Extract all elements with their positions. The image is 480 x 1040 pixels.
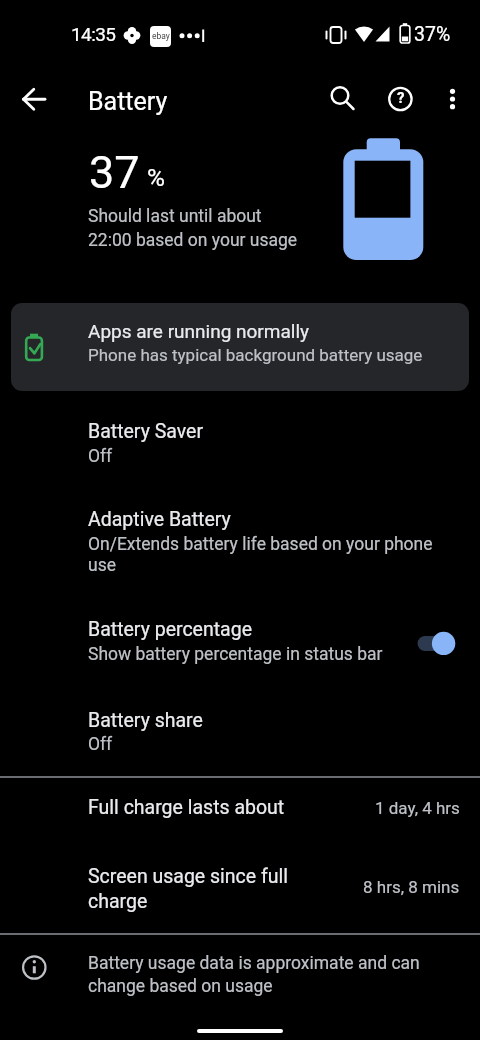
staticText: charge — [88, 890, 148, 913]
button[interactable]: Apps are running normally — [11, 303, 469, 391]
staticText: Battery — [88, 87, 168, 116]
staticText: Show battery percentage in status bar — [88, 644, 383, 665]
button[interactable] — [410, 626, 462, 662]
staticText: 37% — [414, 23, 451, 46]
button[interactable] — [316, 75, 364, 123]
button[interactable]: Battery share — [0, 700, 480, 768]
staticText: Off — [88, 446, 113, 467]
button[interactable]: Adaptive Battery — [0, 500, 480, 590]
button[interactable]: Battery percentage — [0, 612, 480, 688]
staticText: Phone has typical background battery usa… — [88, 345, 423, 365]
staticText: Battery share — [88, 709, 203, 732]
staticText: use — [88, 555, 116, 576]
staticText: On/Extends battery life based on your ph… — [88, 534, 433, 555]
staticText: Battery percentage — [88, 618, 253, 641]
button[interactable] — [10, 75, 58, 123]
staticText: Screen usage since full — [88, 865, 289, 888]
button[interactable]: Full charge lasts about — [0, 788, 480, 838]
button[interactable] — [428, 75, 476, 123]
button[interactable]: Screen usage since full — [0, 856, 480, 922]
staticText: change based on usage — [88, 976, 273, 997]
staticText: 8 hrs, 8 mins — [363, 877, 460, 897]
staticText: % — [147, 163, 165, 192]
button[interactable]: ? — [376, 75, 424, 123]
staticText: 14:35 — [71, 23, 116, 45]
staticText: Apps are running normally — [88, 320, 310, 342]
staticText: Off — [88, 734, 113, 755]
staticText: Battery usage data is approximate and ca… — [88, 953, 420, 974]
staticText: Adaptive Battery — [88, 508, 231, 531]
staticText: 1 day, 4 hrs — [375, 798, 460, 818]
button[interactable]: Battery Saver — [0, 412, 480, 478]
staticText: 37 — [89, 146, 140, 199]
staticText: ? — [397, 89, 405, 107]
staticText: Full charge lasts about — [88, 796, 285, 819]
staticText: Should last until about — [88, 206, 262, 227]
staticText: ebay — [152, 31, 170, 41]
staticText: Battery Saver — [88, 420, 204, 443]
staticText: 22:00 based on your usage — [88, 230, 298, 251]
